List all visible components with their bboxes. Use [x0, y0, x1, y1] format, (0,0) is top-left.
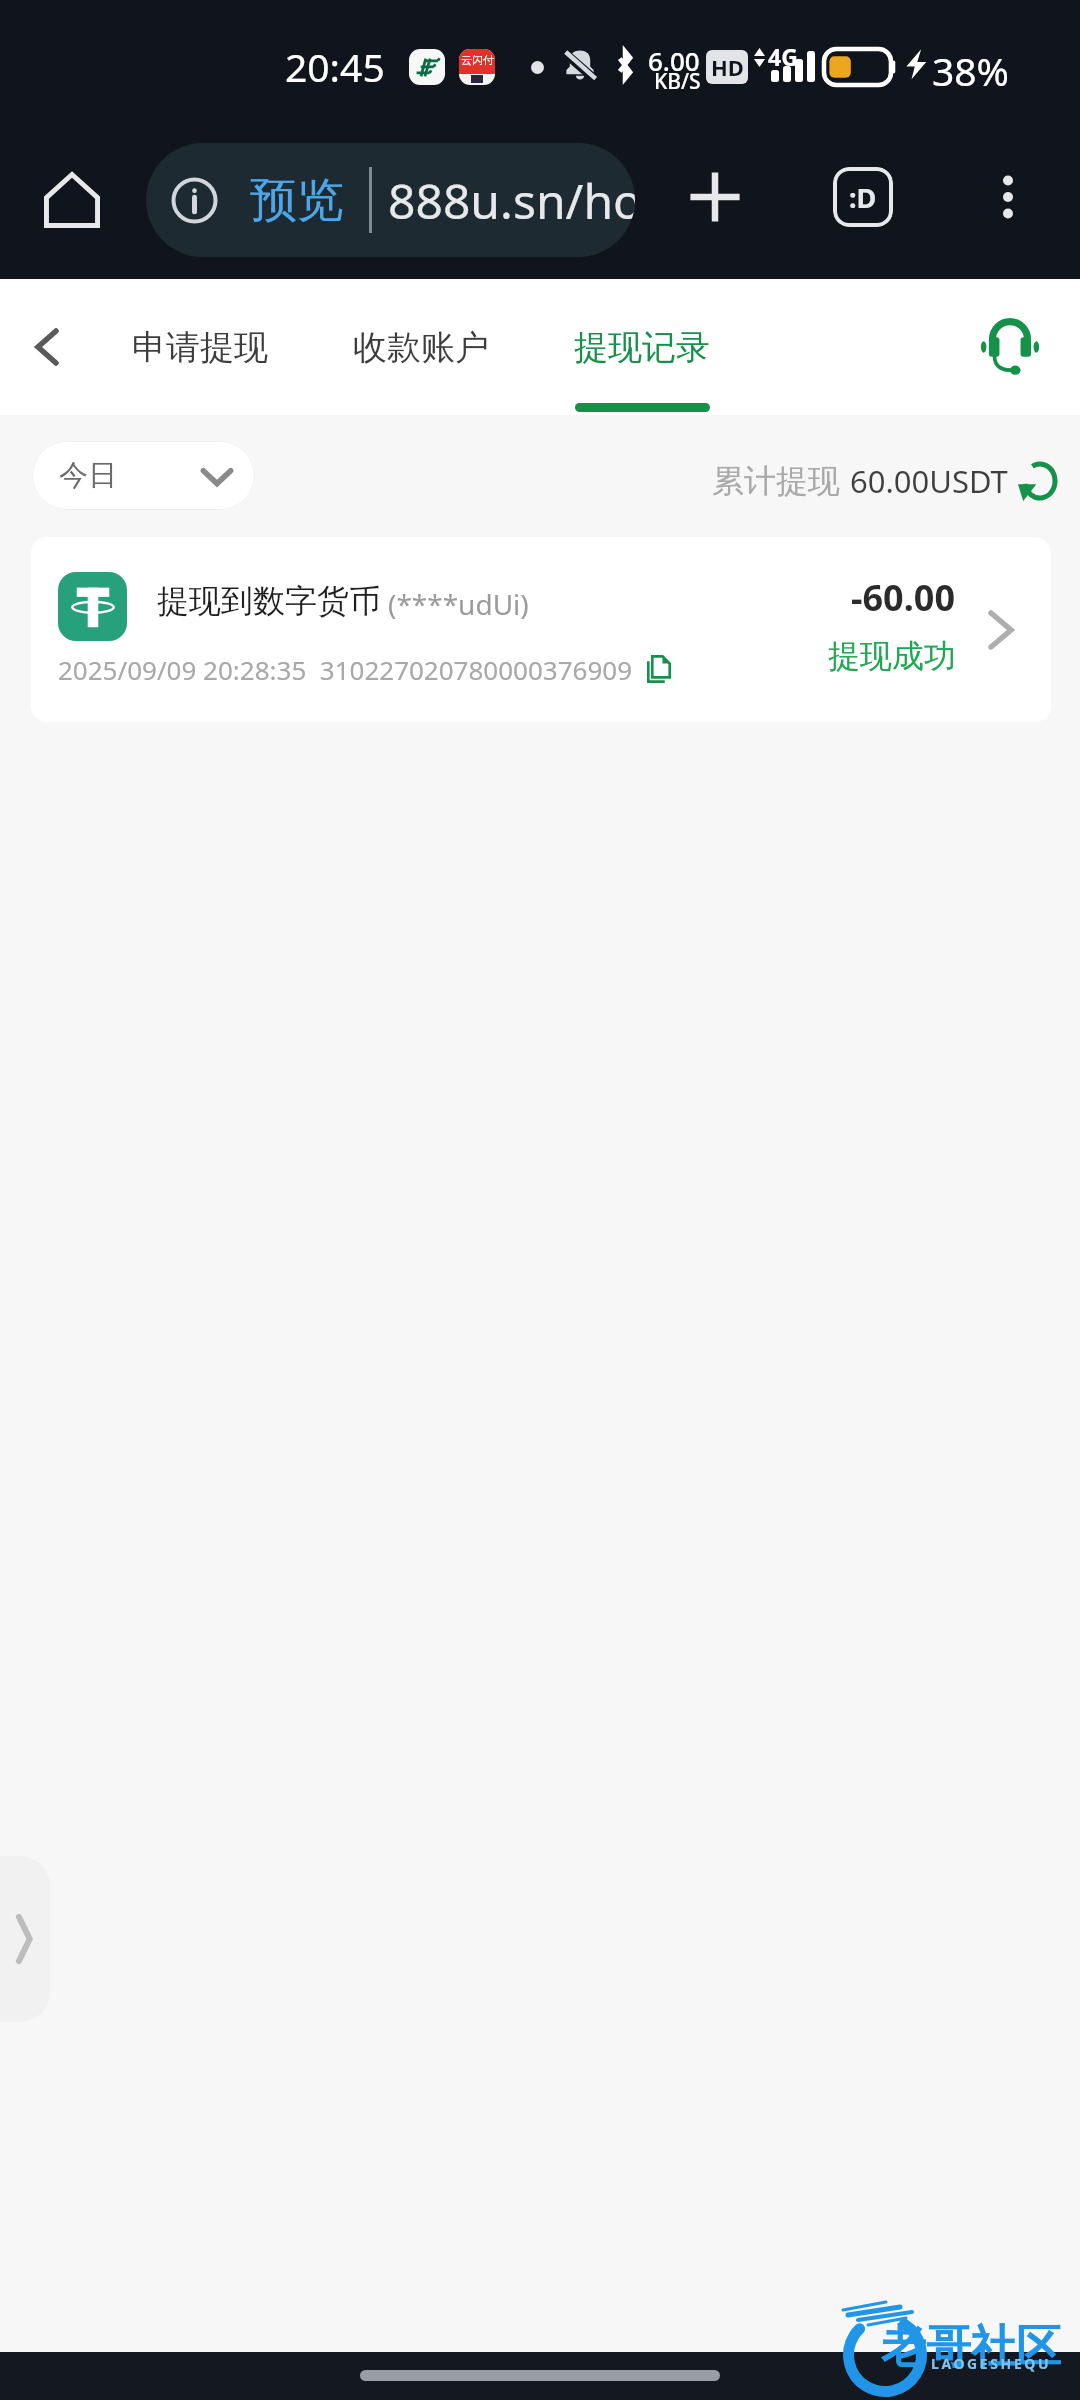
button[interactable]: 今日: [32, 441, 255, 510]
staticText: 20:45: [285, 40, 385, 93]
staticText: (****udUi): [388, 585, 529, 623]
button[interactable]: Refresh: [1014, 457, 1062, 505]
staticText: 2025/09/09 20:28:35 31022702078000037690…: [58, 652, 633, 687]
staticText: 60.00USDT: [850, 460, 1008, 502]
staticText: 4G: [768, 41, 798, 72]
staticText: 提现成功: [828, 636, 956, 676]
button[interactable]: 提现到数字货币: [31, 537, 1051, 722]
staticText: 今日: [59, 457, 117, 494]
staticText: KB/S: [654, 67, 701, 96]
staticText: 老哥社区: [881, 2319, 1061, 2376]
staticText: :D: [849, 179, 877, 216]
staticText: -60.00: [851, 573, 956, 622]
button[interactable]: 收款账户: [332, 279, 509, 415]
button[interactable]: New tab: [673, 155, 757, 239]
button[interactable]: 提现记录: [553, 279, 730, 415]
button[interactable]: 申请提现: [111, 279, 288, 415]
staticText: 提现到数字货币: [157, 581, 381, 621]
staticText: 38%: [932, 44, 1010, 97]
staticText: LAOGESHEQU: [931, 2354, 1052, 2373]
button[interactable]: Back: [0, 279, 94, 415]
staticText: HD: [711, 52, 744, 82]
staticText: 累计提现: [712, 461, 840, 501]
button[interactable]: Expand panel: [0, 1856, 50, 2022]
staticText: 云闪付: [461, 53, 494, 67]
button[interactable]: Home: [26, 154, 118, 246]
staticText: 6.00: [648, 43, 700, 78]
staticText: 提现记录: [574, 326, 710, 369]
button[interactable]: Tabs: [821, 155, 905, 239]
staticText: 888u.sn/hom: [388, 168, 635, 233]
staticText: 收款账户: [353, 326, 489, 369]
button[interactable]: Copy: [637, 647, 681, 691]
staticText: 申请提现: [132, 326, 268, 369]
button[interactable]: 预览: [146, 143, 635, 257]
button[interactable]: Customer service: [954, 279, 1066, 415]
button[interactable]: More options: [966, 155, 1050, 239]
staticText: 预览: [250, 171, 344, 230]
